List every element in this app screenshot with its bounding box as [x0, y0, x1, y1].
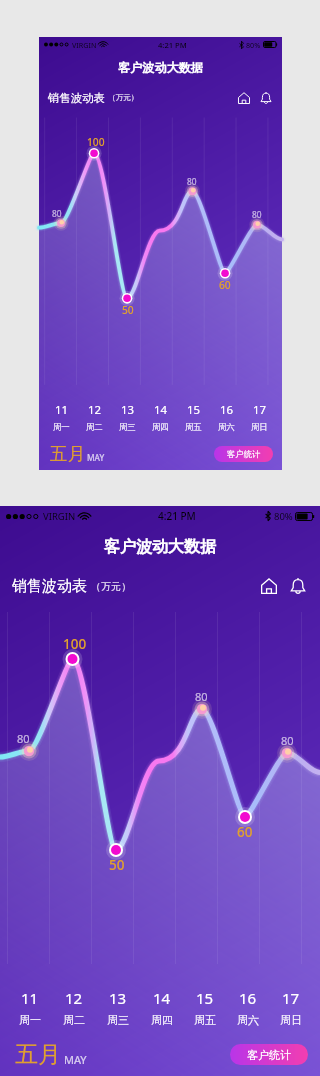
staticText: MAY	[64, 1052, 87, 1067]
staticText: 80	[52, 208, 62, 219]
staticText: 60	[219, 278, 231, 292]
staticText: 60	[237, 823, 253, 841]
staticText: 16	[239, 988, 257, 1008]
staticText: （万元）	[91, 580, 131, 593]
staticText: 周三	[107, 1013, 129, 1027]
staticText: 销售波动表	[12, 577, 87, 596]
staticText: 15	[187, 402, 201, 418]
staticText: 14	[154, 402, 168, 418]
staticText: 50	[109, 856, 125, 874]
button[interactable]: 16	[226, 981, 269, 1033]
staticText: 80	[281, 733, 294, 748]
staticText: 周六	[218, 422, 235, 433]
button[interactable]: 15	[183, 981, 226, 1033]
button[interactable]: 13	[111, 398, 144, 437]
staticText: 80%	[274, 510, 293, 523]
staticText: 80	[187, 176, 197, 187]
staticText: VIRGIN	[72, 40, 97, 50]
staticText: 周日	[280, 1013, 302, 1027]
staticText: 13	[121, 402, 135, 418]
button[interactable]: 14	[144, 398, 177, 437]
button[interactable]: Notifications	[287, 575, 309, 597]
staticText: 13	[109, 988, 127, 1008]
button[interactable]: 14	[140, 981, 183, 1033]
staticText: 周六	[237, 1013, 259, 1027]
staticText: 周日	[251, 422, 268, 433]
staticText: 100	[63, 635, 87, 653]
button[interactable]: 11	[45, 398, 78, 437]
staticText: 14	[153, 988, 171, 1008]
staticText: 80	[252, 209, 262, 220]
staticText: 销售波动表	[48, 91, 105, 105]
staticText: 周一	[19, 1013, 41, 1027]
staticText: VIRGIN	[43, 510, 76, 523]
staticText: 80	[195, 689, 208, 704]
staticText: （万元）	[108, 93, 139, 103]
button[interactable]: 17	[243, 398, 276, 437]
staticText: 11	[55, 402, 69, 418]
staticText: 16	[220, 402, 234, 418]
staticText: 周五	[194, 1013, 216, 1027]
staticText: 80	[17, 731, 30, 746]
staticText: 客户统计	[247, 1048, 291, 1062]
button[interactable]: 客户统计	[214, 446, 273, 462]
staticText: 17	[253, 402, 267, 418]
staticText: 客户波动大数据	[118, 60, 203, 75]
staticText: 50	[122, 303, 134, 317]
staticText: 4:21 PM	[158, 509, 196, 523]
staticText: 周五	[185, 422, 202, 433]
staticText: 周四	[151, 1013, 173, 1027]
staticText: 11	[21, 988, 39, 1008]
staticText: 15	[196, 988, 214, 1008]
button[interactable]: 客户统计	[230, 1044, 308, 1065]
button[interactable]: 11	[8, 981, 52, 1033]
staticText: 80%	[246, 40, 261, 50]
button[interactable]: 16	[210, 398, 243, 437]
staticText: 周一	[53, 422, 70, 433]
staticText: 12	[88, 402, 102, 418]
staticText: 五月	[15, 1040, 61, 1069]
button[interactable]: 15	[177, 398, 210, 437]
staticText: 周二	[86, 422, 103, 433]
staticText: 五月	[50, 443, 85, 465]
staticText: 12	[65, 988, 83, 1008]
staticText: 100	[87, 135, 105, 149]
button[interactable]: Home	[258, 575, 280, 597]
button[interactable]: 17	[269, 981, 312, 1033]
button[interactable]: Notifications	[257, 89, 274, 106]
button[interactable]: 12	[78, 398, 111, 437]
staticText: 4:21 PM	[158, 40, 187, 50]
button[interactable]: Home	[235, 89, 252, 106]
staticText: 周二	[63, 1013, 85, 1027]
staticText: 周三	[119, 422, 136, 433]
button[interactable]: 13	[96, 981, 140, 1033]
staticText: 客户统计	[227, 449, 261, 460]
button[interactable]: 12	[52, 981, 96, 1033]
staticText: MAY	[87, 452, 105, 463]
staticText: 17	[282, 988, 300, 1008]
staticText: 周四	[152, 422, 169, 433]
staticText: 客户波动大数据	[104, 537, 216, 557]
